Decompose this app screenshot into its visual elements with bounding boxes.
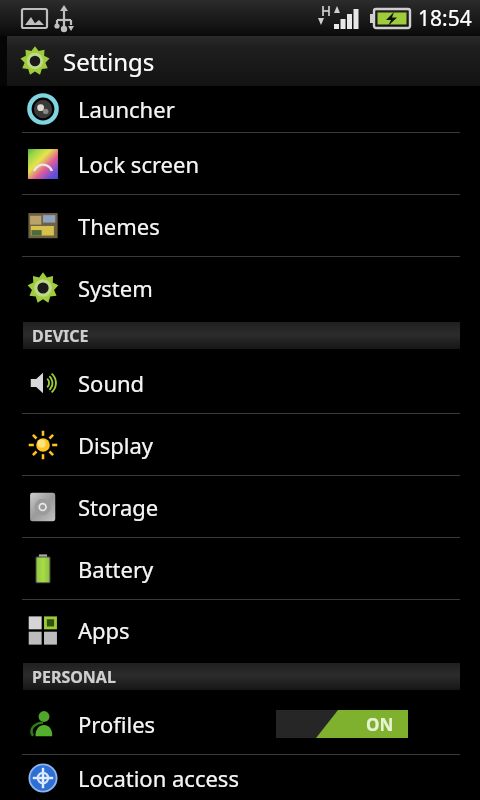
button[interactable]: System (0, 257, 480, 318)
staticText: Apps (78, 615, 130, 645)
staticText: ON (366, 713, 394, 736)
button[interactable]: Battery (0, 538, 480, 599)
staticText: 18:54 (418, 4, 472, 33)
staticText: Themes (78, 211, 160, 241)
staticText: Sound (78, 368, 145, 398)
staticText: Display (78, 430, 154, 460)
staticText: DEVICE (32, 325, 89, 347)
button[interactable]: Launcher (0, 86, 480, 132)
button[interactable]: ON (276, 710, 408, 738)
staticText: Lock screen (78, 149, 200, 179)
button[interactable]: Settings (7, 36, 480, 86)
button[interactable]: Lock screen (0, 133, 480, 194)
button[interactable]: Display (0, 414, 480, 475)
staticText: PERSONAL (32, 666, 116, 688)
staticText: Storage (78, 492, 159, 522)
staticText: Settings (63, 45, 155, 78)
staticText: System (78, 273, 153, 303)
button[interactable]: Location access (0, 755, 480, 800)
button[interactable]: Storage (0, 476, 480, 537)
staticText: Location access (78, 763, 239, 793)
staticText: Battery (78, 554, 154, 584)
staticText: Profiles (78, 709, 156, 739)
button[interactable]: Apps (0, 600, 480, 659)
button[interactable]: Sound (0, 352, 480, 413)
button[interactable]: Profiles (0, 693, 480, 754)
button[interactable]: Themes (0, 195, 480, 256)
staticText: Launcher (78, 94, 175, 124)
